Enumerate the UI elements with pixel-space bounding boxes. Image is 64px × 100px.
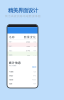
staticText: 项目一	[9, 41, 12, 43]
staticText: 946	[33, 75, 36, 77]
button[interactable]: 项目四	[9, 53, 36, 57]
staticText: 名称	[9, 36, 15, 39]
staticText: 项目三	[9, 50, 12, 51]
button[interactable]: 查看全部	[28, 65, 36, 68]
staticText: 月度目标	[9, 79, 13, 81]
button[interactable]: 项目三	[9, 48, 36, 53]
button[interactable]: 月度目标	[9, 78, 36, 81]
staticText: 2480	[26, 41, 30, 43]
staticText: 统计信息	[9, 61, 21, 64]
staticText: +9%	[33, 50, 36, 52]
staticText: 变化	[30, 36, 36, 39]
staticText: 128	[33, 71, 36, 73]
staticText: 精美界面设计	[8, 7, 38, 14]
staticText: 4000	[32, 79, 36, 81]
staticText: 3140	[26, 50, 30, 52]
staticText: 数量	[24, 36, 30, 39]
button[interactable]: 项目二	[9, 44, 36, 48]
button[interactable]: 完成率	[9, 82, 36, 85]
staticText: +1%	[33, 54, 36, 56]
staticText: 今日新增	[9, 71, 13, 73]
staticText: 1260	[26, 45, 30, 47]
staticText: +4%	[33, 41, 36, 43]
staticText: 查看全部	[32, 66, 36, 68]
staticText: 本周总计	[9, 75, 13, 77]
staticText: 完成率	[9, 83, 12, 85]
staticText: 简洁高效的移动端数据体验	[5, 15, 41, 18]
button[interactable]: 今日新增	[9, 70, 36, 73]
staticText: 项目二	[9, 45, 12, 47]
button[interactable]: 本周总计	[9, 74, 36, 77]
staticText: 78%	[33, 83, 36, 85]
staticText: 最近七天的数据	[9, 65, 16, 66]
button[interactable]: 项目一	[9, 40, 36, 44]
staticText: -2%	[34, 45, 36, 47]
staticText: 980	[27, 54, 30, 56]
